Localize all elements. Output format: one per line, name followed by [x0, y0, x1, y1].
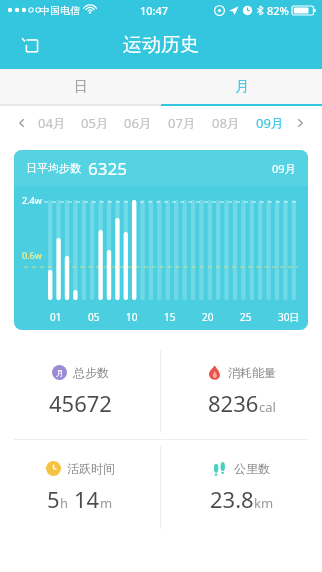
button[interactable]: 05月 — [73, 106, 116, 140]
staticText: 日 — [74, 78, 88, 96]
staticText: cal — [259, 398, 276, 416]
staticText: 总步数 — [73, 365, 109, 380]
staticText: m — [100, 494, 113, 512]
staticText: 活跃时间 — [67, 461, 115, 476]
staticText: 09月 — [256, 114, 284, 132]
staticText: h — [60, 494, 69, 512]
staticText: 公里数 — [234, 461, 270, 476]
button[interactable]: 08月 — [204, 106, 248, 140]
staticText: 30日 — [278, 310, 300, 324]
staticText: 05月 — [81, 114, 109, 132]
staticText: 07月 — [168, 114, 196, 132]
button[interactable]: 消耗能量 — [161, 344, 322, 439]
staticText: 8236 — [208, 388, 259, 418]
button[interactable]: 09月 — [248, 106, 292, 140]
staticText: 09月 — [272, 161, 296, 176]
staticText: 日平均步数 — [26, 161, 81, 175]
staticText: 82% — [267, 3, 289, 18]
staticText: 中国电信 — [40, 4, 80, 17]
staticText: 2.4w — [22, 194, 42, 206]
staticText: 10:47 — [140, 3, 169, 18]
staticText: 08月 — [212, 114, 240, 132]
staticText: 消耗能量 — [228, 365, 276, 380]
button[interactable]: 日 — [0, 69, 161, 104]
staticText: 20 — [202, 310, 214, 324]
staticText: 23.8 — [210, 484, 254, 514]
button[interactable]: Next — [292, 115, 308, 131]
button[interactable]: 月 — [0, 344, 160, 439]
staticText: 月 — [235, 78, 249, 96]
staticText: 6325 — [88, 157, 127, 180]
staticText: 04月 — [38, 114, 66, 132]
button[interactable]: 日平均步数 — [14, 150, 308, 330]
staticText: 运动历史 — [123, 33, 199, 57]
staticText: 月 — [56, 368, 64, 378]
button[interactable]: 04月 — [30, 106, 73, 140]
staticText: 0.6w — [22, 249, 42, 261]
staticText: 06月 — [124, 114, 152, 132]
button[interactable]: 月 — [161, 69, 322, 104]
button[interactable]: Back — [10, 25, 50, 65]
staticText: km — [254, 494, 274, 512]
button[interactable]: 06月 — [116, 106, 160, 140]
button[interactable]: 活跃时间 — [0, 440, 160, 535]
staticText: 05 — [88, 310, 100, 324]
staticText: 25 — [240, 310, 252, 324]
button[interactable]: Previous — [14, 115, 30, 131]
button[interactable]: 公里数 — [161, 440, 322, 535]
staticText: 15 — [164, 310, 176, 324]
staticText: 14 — [74, 484, 100, 514]
button[interactable]: 07月 — [160, 106, 204, 140]
staticText: 10 — [126, 310, 138, 324]
staticText: 45672 — [49, 388, 112, 418]
staticText: 01 — [50, 310, 62, 324]
staticText: 5 — [47, 484, 60, 514]
